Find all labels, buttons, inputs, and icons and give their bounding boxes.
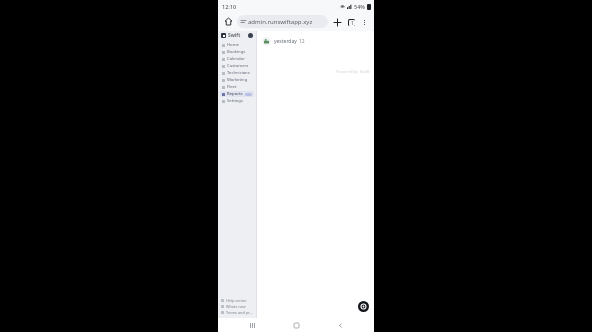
button[interactable]: Whats new bbox=[221, 303, 253, 309]
staticText: 12 bbox=[299, 38, 305, 45]
button[interactable]: Reports bbox=[220, 91, 254, 97]
staticText: admin.runswiftapp.xyz bbox=[248, 18, 313, 26]
button[interactable]: Marketing bbox=[220, 77, 254, 83]
staticText: Home bbox=[227, 42, 239, 48]
staticText: Powered by bbox=[336, 69, 358, 74]
button[interactable]: Settings bbox=[220, 98, 254, 104]
button[interactable]: Tabs bbox=[345, 16, 357, 28]
button[interactable]: More options bbox=[358, 16, 370, 28]
button[interactable]: Fleet bbox=[220, 84, 254, 90]
button[interactable]: admin.runswiftapp.xyz bbox=[237, 15, 328, 28]
staticText: Technicians bbox=[227, 70, 250, 76]
staticText: Swift bbox=[228, 32, 241, 39]
button[interactable]: Terms and privacy bbox=[221, 309, 253, 315]
button[interactable]: Home bbox=[222, 15, 235, 28]
staticText: 12:10 bbox=[222, 3, 237, 10]
button[interactable]: Chat support bbox=[358, 301, 369, 312]
button[interactable]: Back bbox=[330, 318, 350, 332]
staticText: Whats new bbox=[226, 304, 246, 309]
staticText: Swift bbox=[360, 69, 370, 74]
button[interactable]: Home bbox=[286, 318, 306, 332]
staticText: Settings bbox=[227, 98, 243, 104]
staticText: Fleet bbox=[227, 84, 237, 90]
button[interactable]: Technicians bbox=[220, 70, 254, 76]
staticText: Reports bbox=[227, 91, 243, 97]
staticText: 54% bbox=[354, 3, 365, 10]
staticText: Help center bbox=[226, 298, 247, 303]
button[interactable]: Home bbox=[220, 42, 254, 48]
button[interactable]: Help center bbox=[221, 297, 253, 303]
staticText: 1 bbox=[351, 20, 354, 26]
button[interactable]: New tab bbox=[331, 16, 343, 28]
button[interactable]: yesterday bbox=[262, 35, 370, 47]
button[interactable]: Recent apps bbox=[242, 318, 262, 332]
staticText: Customers bbox=[227, 63, 249, 69]
button[interactable]: Collapse menu bbox=[248, 33, 253, 38]
staticText: Calendar bbox=[227, 56, 245, 62]
button[interactable]: Calendar bbox=[220, 56, 254, 62]
staticText: Marketing bbox=[227, 77, 248, 83]
button[interactable]: Customers bbox=[220, 63, 254, 69]
button[interactable]: Bookings bbox=[220, 49, 254, 55]
staticText: yesterday bbox=[274, 38, 297, 45]
staticText: Bookings bbox=[227, 49, 246, 55]
staticText: Terms and privacy bbox=[226, 310, 253, 315]
